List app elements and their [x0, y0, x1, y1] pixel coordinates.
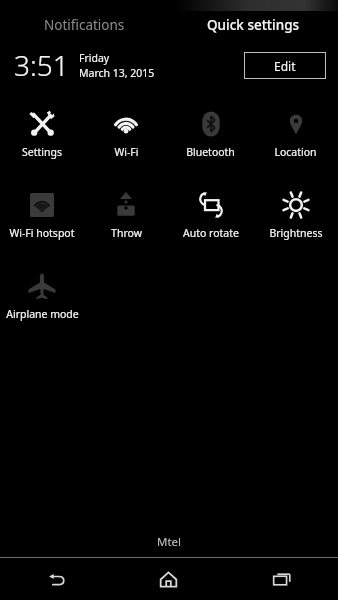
button[interactable]: Wi-Fi hotspot — [0, 180, 84, 261]
button[interactable]: Throw — [84, 180, 168, 261]
button[interactable]: Quick settings — [169, 11, 338, 39]
staticText: Wi-Fi — [114, 145, 139, 159]
button[interactable]: Wi-Fi — [84, 99, 168, 180]
button[interactable]: Bluetooth — [168, 99, 253, 180]
button[interactable]: Notifications — [0, 11, 169, 39]
staticText: Quick settings — [207, 16, 300, 34]
button[interactable]: Brightness — [253, 180, 338, 261]
staticText: Airplane mode — [6, 307, 79, 321]
button[interactable]: Back — [0, 558, 112, 600]
button[interactable]: Airplane mode — [0, 261, 84, 342]
staticText: 3:51 — [14, 46, 69, 84]
staticText: Throw — [111, 226, 142, 240]
staticText: Bluetooth — [186, 145, 235, 159]
staticText: Friday — [79, 51, 110, 65]
staticText: Mtel — [157, 534, 182, 550]
staticText: Location — [274, 145, 317, 159]
staticText: Auto rotate — [183, 226, 239, 240]
staticText: March 13, 2015 — [79, 66, 155, 80]
staticText: Notifications — [44, 16, 125, 34]
staticText: Edit — [274, 58, 296, 74]
staticText: Settings — [22, 145, 62, 159]
staticText: Wi-Fi hotspot — [9, 226, 75, 240]
button[interactable]: Recents — [225, 558, 338, 600]
button[interactable]: Settings — [0, 99, 84, 180]
staticText: Brightness — [269, 226, 323, 240]
button[interactable]: Location — [253, 99, 338, 180]
button[interactable]: Auto rotate — [168, 180, 253, 261]
button[interactable]: Edit — [244, 52, 326, 79]
button[interactable]: Home — [112, 558, 225, 600]
